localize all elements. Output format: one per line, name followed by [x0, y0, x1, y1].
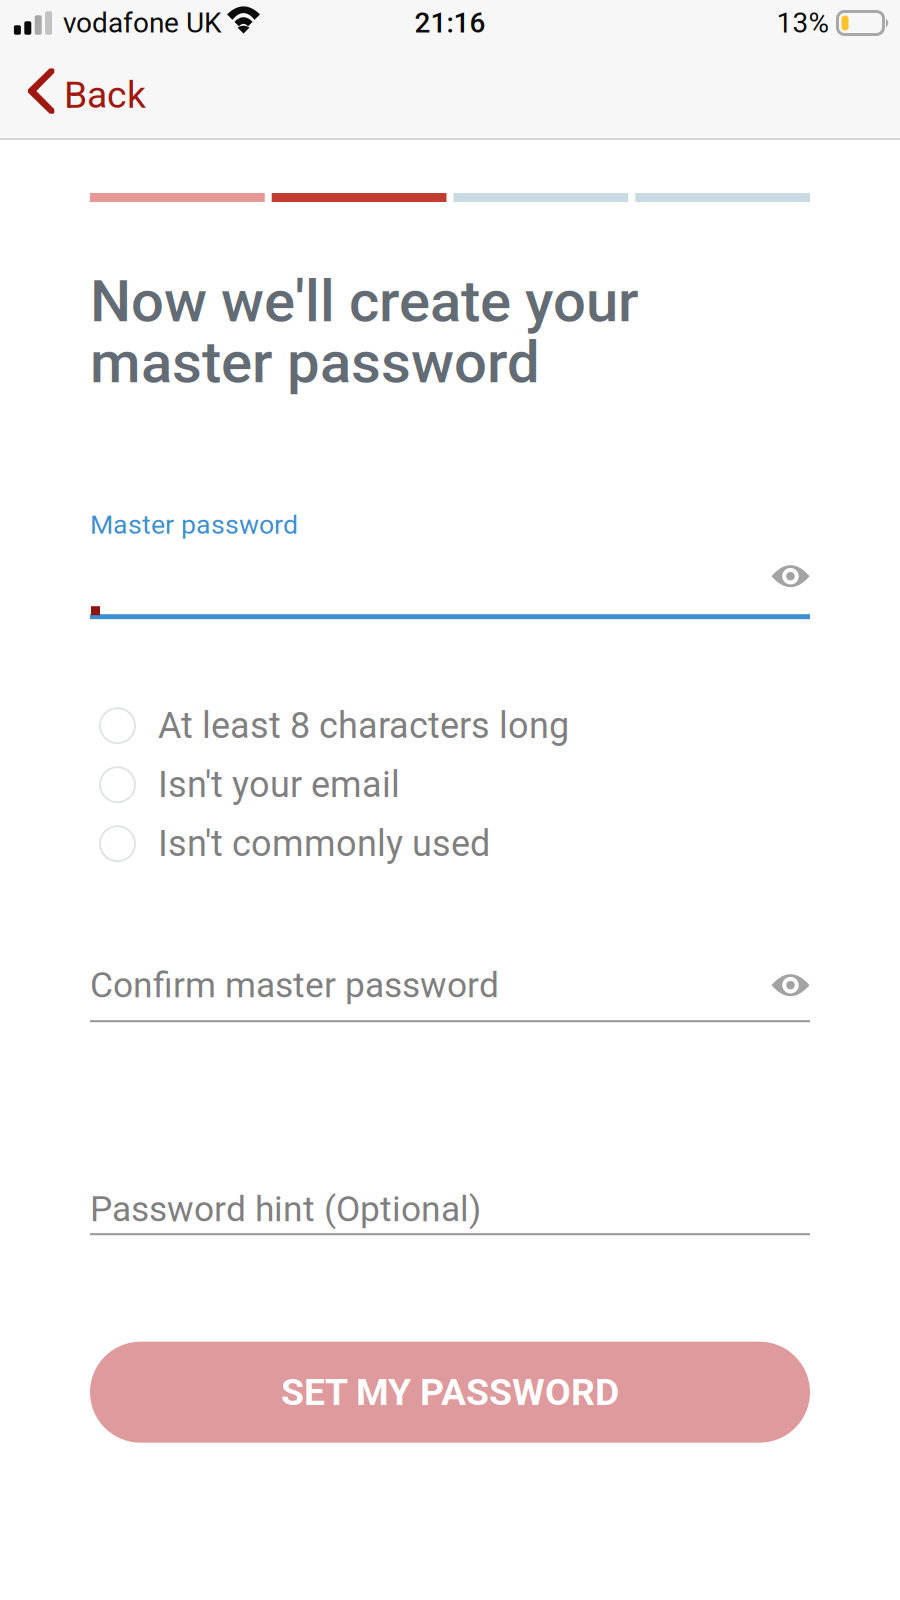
staticText: Master password	[90, 509, 298, 540]
staticText: 21:16	[414, 7, 485, 39]
staticText: Now we'll create your master password	[90, 267, 639, 396]
button[interactable]: Back	[0, 52, 166, 138]
button[interactable]: SET MY PASSWORD	[90, 1342, 810, 1443]
staticText: Isn't your email	[158, 764, 400, 806]
staticText: Isn't commonly used	[158, 823, 490, 865]
staticText: At least 8 characters long	[158, 705, 569, 747]
staticText: vodafone UK	[63, 7, 222, 39]
staticText: Back	[64, 73, 146, 117]
staticText: 13%	[776, 7, 829, 39]
button[interactable]: Show password	[750, 960, 810, 1010]
staticText: Password hint (Optional)	[90, 1188, 481, 1230]
staticText: SET MY PASSWORD	[281, 1370, 619, 1414]
button[interactable]: Show password	[750, 551, 810, 601]
staticText: Confirm master password	[90, 964, 499, 1006]
